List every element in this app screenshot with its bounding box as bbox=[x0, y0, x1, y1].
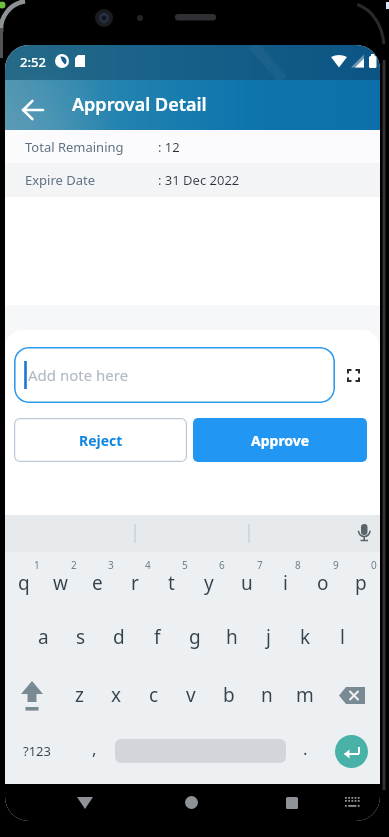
button[interactable]: o bbox=[304, 563, 342, 603]
button[interactable] bbox=[340, 362, 366, 388]
staticText: 3 bbox=[108, 558, 114, 572]
staticText: 8 bbox=[295, 558, 301, 572]
button[interactable]: d bbox=[100, 617, 138, 657]
staticText: 5 bbox=[182, 558, 188, 572]
button[interactable]: n bbox=[248, 675, 286, 715]
button[interactable]: p bbox=[342, 563, 380, 603]
staticText: v bbox=[186, 682, 196, 708]
button[interactable]: e bbox=[79, 563, 116, 603]
staticText: d bbox=[113, 624, 125, 650]
button[interactable]: f bbox=[138, 617, 176, 657]
staticText: h bbox=[226, 624, 238, 650]
button[interactable] bbox=[173, 784, 210, 821]
button[interactable]: x bbox=[98, 675, 135, 715]
button[interactable]: u bbox=[228, 563, 266, 603]
button[interactable]: s bbox=[62, 617, 100, 657]
staticText: Total Remaining bbox=[25, 138, 124, 156]
staticText: 0 bbox=[371, 558, 377, 572]
staticText: r bbox=[131, 570, 139, 596]
button[interactable]: l bbox=[324, 617, 361, 657]
staticText: z bbox=[75, 682, 84, 708]
button[interactable]: i bbox=[266, 563, 304, 603]
staticText: : 31 Dec 2022 bbox=[158, 171, 240, 189]
staticText: 9 bbox=[333, 558, 339, 572]
staticText: q bbox=[18, 570, 30, 596]
staticText: ?123 bbox=[23, 742, 51, 760]
staticText: . bbox=[303, 737, 308, 760]
staticText: t bbox=[168, 570, 175, 596]
staticText: 6 bbox=[219, 558, 225, 572]
button[interactable]: Add note here bbox=[14, 347, 335, 403]
button[interactable] bbox=[335, 735, 368, 768]
staticText: k bbox=[300, 624, 311, 650]
button[interactable]: w bbox=[42, 563, 79, 603]
button[interactable]: j bbox=[250, 617, 287, 657]
button[interactable]: g bbox=[176, 617, 213, 657]
staticText: l bbox=[340, 624, 345, 650]
staticText: Reject bbox=[79, 431, 123, 450]
button[interactable]: y bbox=[190, 563, 228, 603]
staticText: Add note here bbox=[28, 365, 129, 385]
staticText: 2:52 bbox=[20, 53, 46, 71]
staticText: 1 bbox=[34, 558, 40, 572]
staticText: , bbox=[92, 737, 97, 760]
button[interactable] bbox=[330, 675, 374, 715]
button[interactable] bbox=[337, 784, 367, 821]
button[interactable]: z bbox=[61, 675, 98, 715]
button[interactable]: q bbox=[5, 563, 42, 603]
staticText: u bbox=[241, 570, 253, 596]
button[interactable]: v bbox=[172, 675, 210, 715]
staticText: i bbox=[283, 570, 288, 596]
button[interactable] bbox=[10, 675, 54, 719]
button[interactable] bbox=[67, 784, 103, 821]
staticText: f bbox=[154, 624, 161, 650]
button[interactable]: t bbox=[153, 563, 190, 603]
staticText: n bbox=[261, 682, 273, 708]
staticText: m bbox=[296, 682, 314, 708]
staticText: Expire Date bbox=[25, 171, 96, 189]
button[interactable]: k bbox=[287, 617, 324, 657]
staticText: c bbox=[149, 682, 159, 708]
staticText: s bbox=[76, 624, 86, 650]
staticText: e bbox=[92, 570, 103, 596]
staticText: 2 bbox=[71, 558, 77, 572]
staticText: : 12 bbox=[158, 138, 180, 156]
button[interactable]: m bbox=[286, 675, 324, 715]
button[interactable]: Total Remaining bbox=[5, 130, 380, 163]
staticText: Approval Detail bbox=[72, 92, 207, 117]
staticText: w bbox=[53, 570, 68, 596]
staticText: j bbox=[266, 624, 271, 650]
button[interactable]: ?123 bbox=[13, 731, 61, 771]
staticText: b bbox=[223, 682, 235, 708]
button[interactable]: b bbox=[210, 675, 248, 715]
staticText: 4 bbox=[145, 558, 151, 572]
button[interactable]: c bbox=[135, 675, 172, 715]
staticText: g bbox=[189, 624, 201, 650]
button[interactable] bbox=[13, 90, 53, 130]
staticText: p bbox=[355, 570, 367, 596]
button[interactable]: Expire Date bbox=[5, 163, 380, 197]
button[interactable]: Approve bbox=[193, 418, 367, 462]
staticText: o bbox=[317, 570, 329, 596]
button[interactable]: a bbox=[24, 617, 62, 657]
staticText: x bbox=[111, 682, 122, 708]
staticText: Approve bbox=[251, 431, 310, 450]
staticText: 7 bbox=[257, 558, 263, 572]
button[interactable]: h bbox=[213, 617, 250, 657]
staticText: y bbox=[204, 570, 214, 596]
button[interactable]: r bbox=[116, 563, 153, 603]
staticText: a bbox=[38, 624, 49, 650]
button[interactable] bbox=[274, 784, 310, 821]
button[interactable]: Reject bbox=[14, 418, 187, 462]
